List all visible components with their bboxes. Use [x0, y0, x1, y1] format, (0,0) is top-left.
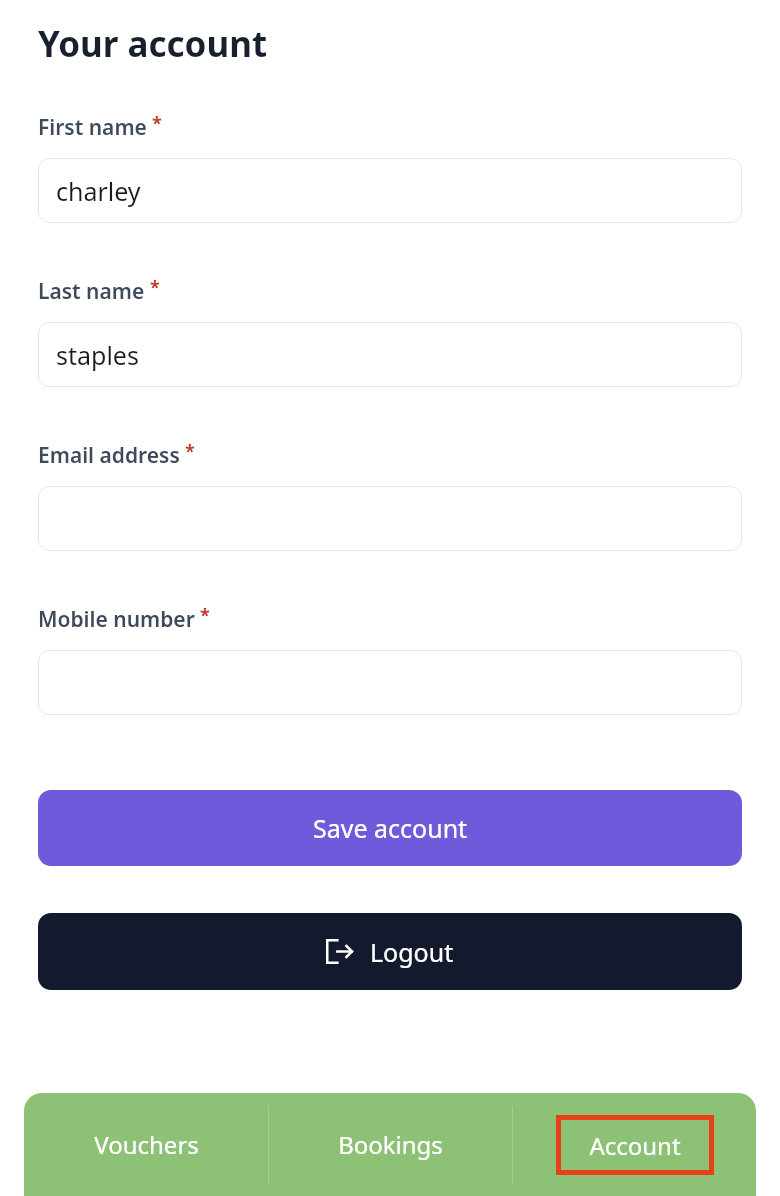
- button[interactable]: [38, 486, 742, 551]
- staticText: *: [152, 111, 162, 136]
- staticText: First name: [38, 113, 147, 142]
- button[interactable]: Logout: [38, 913, 742, 990]
- staticText: Your account: [38, 20, 268, 68]
- staticText: *: [150, 275, 160, 300]
- staticText: charley: [56, 174, 141, 208]
- staticText: Email address: [38, 441, 180, 470]
- staticText: Logout: [370, 935, 454, 969]
- staticText: Bookings: [338, 1128, 443, 1161]
- staticText: *: [200, 603, 210, 628]
- staticText: Save account: [313, 811, 468, 845]
- staticText: Last name: [38, 277, 145, 306]
- staticText: Vouchers: [94, 1128, 199, 1161]
- staticText: staples: [56, 338, 139, 372]
- staticText: Mobile number: [38, 605, 195, 634]
- staticText: Account: [589, 1129, 681, 1162]
- button[interactable]: [38, 650, 742, 715]
- staticText: *: [185, 439, 195, 464]
- button[interactable]: Save account: [38, 790, 742, 866]
- button[interactable]: Bookings: [269, 1093, 512, 1196]
- button[interactable]: staples: [38, 322, 742, 387]
- button[interactable]: Account: [556, 1115, 714, 1175]
- button[interactable]: charley: [38, 158, 742, 223]
- button[interactable]: Vouchers: [24, 1093, 268, 1196]
